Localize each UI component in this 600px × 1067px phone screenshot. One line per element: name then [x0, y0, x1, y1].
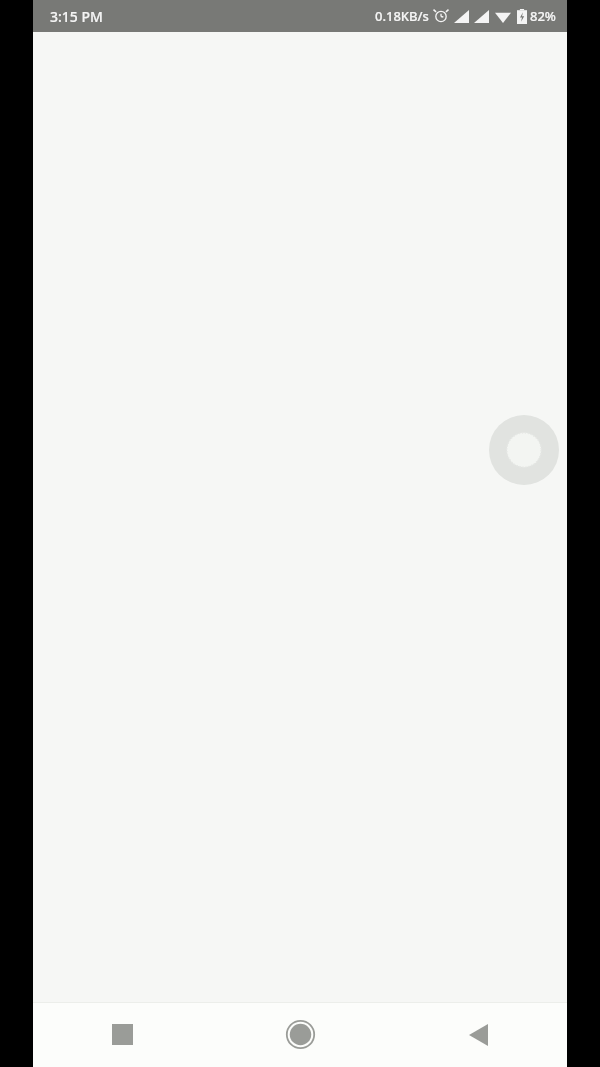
button[interactable]: Loading: [489, 415, 559, 485]
staticText: 3:15 PM: [50, 7, 103, 26]
staticText: 82%: [530, 7, 556, 25]
button[interactable]: Home: [211, 1002, 389, 1067]
staticText: 0.18KB/s: [375, 7, 429, 25]
button[interactable]: Recent apps: [33, 1002, 211, 1067]
button[interactable]: Back: [389, 1002, 567, 1067]
